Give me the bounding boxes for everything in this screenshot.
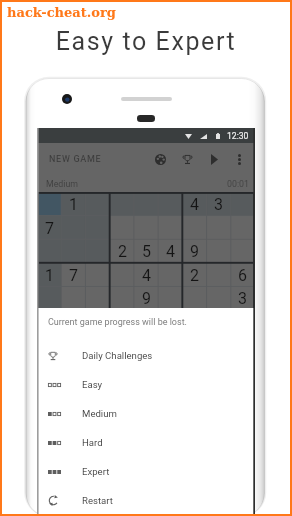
- staticText: Hard: [82, 437, 103, 448]
- staticText: Current game progress will be lost.: [48, 317, 187, 328]
- staticText: 2: [190, 266, 199, 285]
- button[interactable]: Leaderboard: [176, 143, 198, 176]
- staticText: Easy to Expert: [0, 27, 292, 56]
- button[interactable]: Medium: [37, 399, 255, 428]
- staticText: 4: [166, 242, 175, 261]
- staticText: 4: [190, 195, 199, 214]
- button[interactable]: Easy: [37, 370, 255, 399]
- staticText: Daily Challenges: [82, 350, 153, 361]
- staticText: Medium: [46, 179, 79, 189]
- staticText: 4: [142, 266, 151, 285]
- staticText: 5: [142, 242, 151, 261]
- staticText: hack-cheat.org: [7, 5, 116, 20]
- staticText: 3: [214, 195, 223, 214]
- button[interactable]: Hard: [37, 428, 255, 457]
- staticText: 9: [190, 242, 199, 261]
- staticText: 00:01: [227, 179, 249, 189]
- staticText: 7: [69, 266, 78, 285]
- staticText: 7: [45, 219, 54, 238]
- button[interactable]: Play: [203, 143, 225, 176]
- staticText: 6: [238, 266, 247, 285]
- button[interactable]: More options: [228, 143, 250, 176]
- staticText: 1: [45, 266, 54, 285]
- staticText: NEW GAME: [49, 154, 102, 165]
- staticText: Easy: [82, 379, 103, 390]
- button[interactable]: Restart: [37, 486, 255, 515]
- staticText: Medium: [82, 408, 117, 419]
- staticText: 12:30: [227, 131, 249, 141]
- staticText: Restart: [82, 495, 113, 506]
- staticText: 1: [69, 195, 78, 214]
- button[interactable]: Daily Challenges: [37, 341, 255, 370]
- staticText: Expert: [82, 466, 110, 477]
- staticText: 3: [238, 289, 247, 308]
- button[interactable]: Expert: [37, 457, 255, 486]
- staticText: 2: [118, 242, 127, 261]
- button[interactable]: Theme: [149, 143, 171, 176]
- staticText: 9: [142, 289, 151, 308]
